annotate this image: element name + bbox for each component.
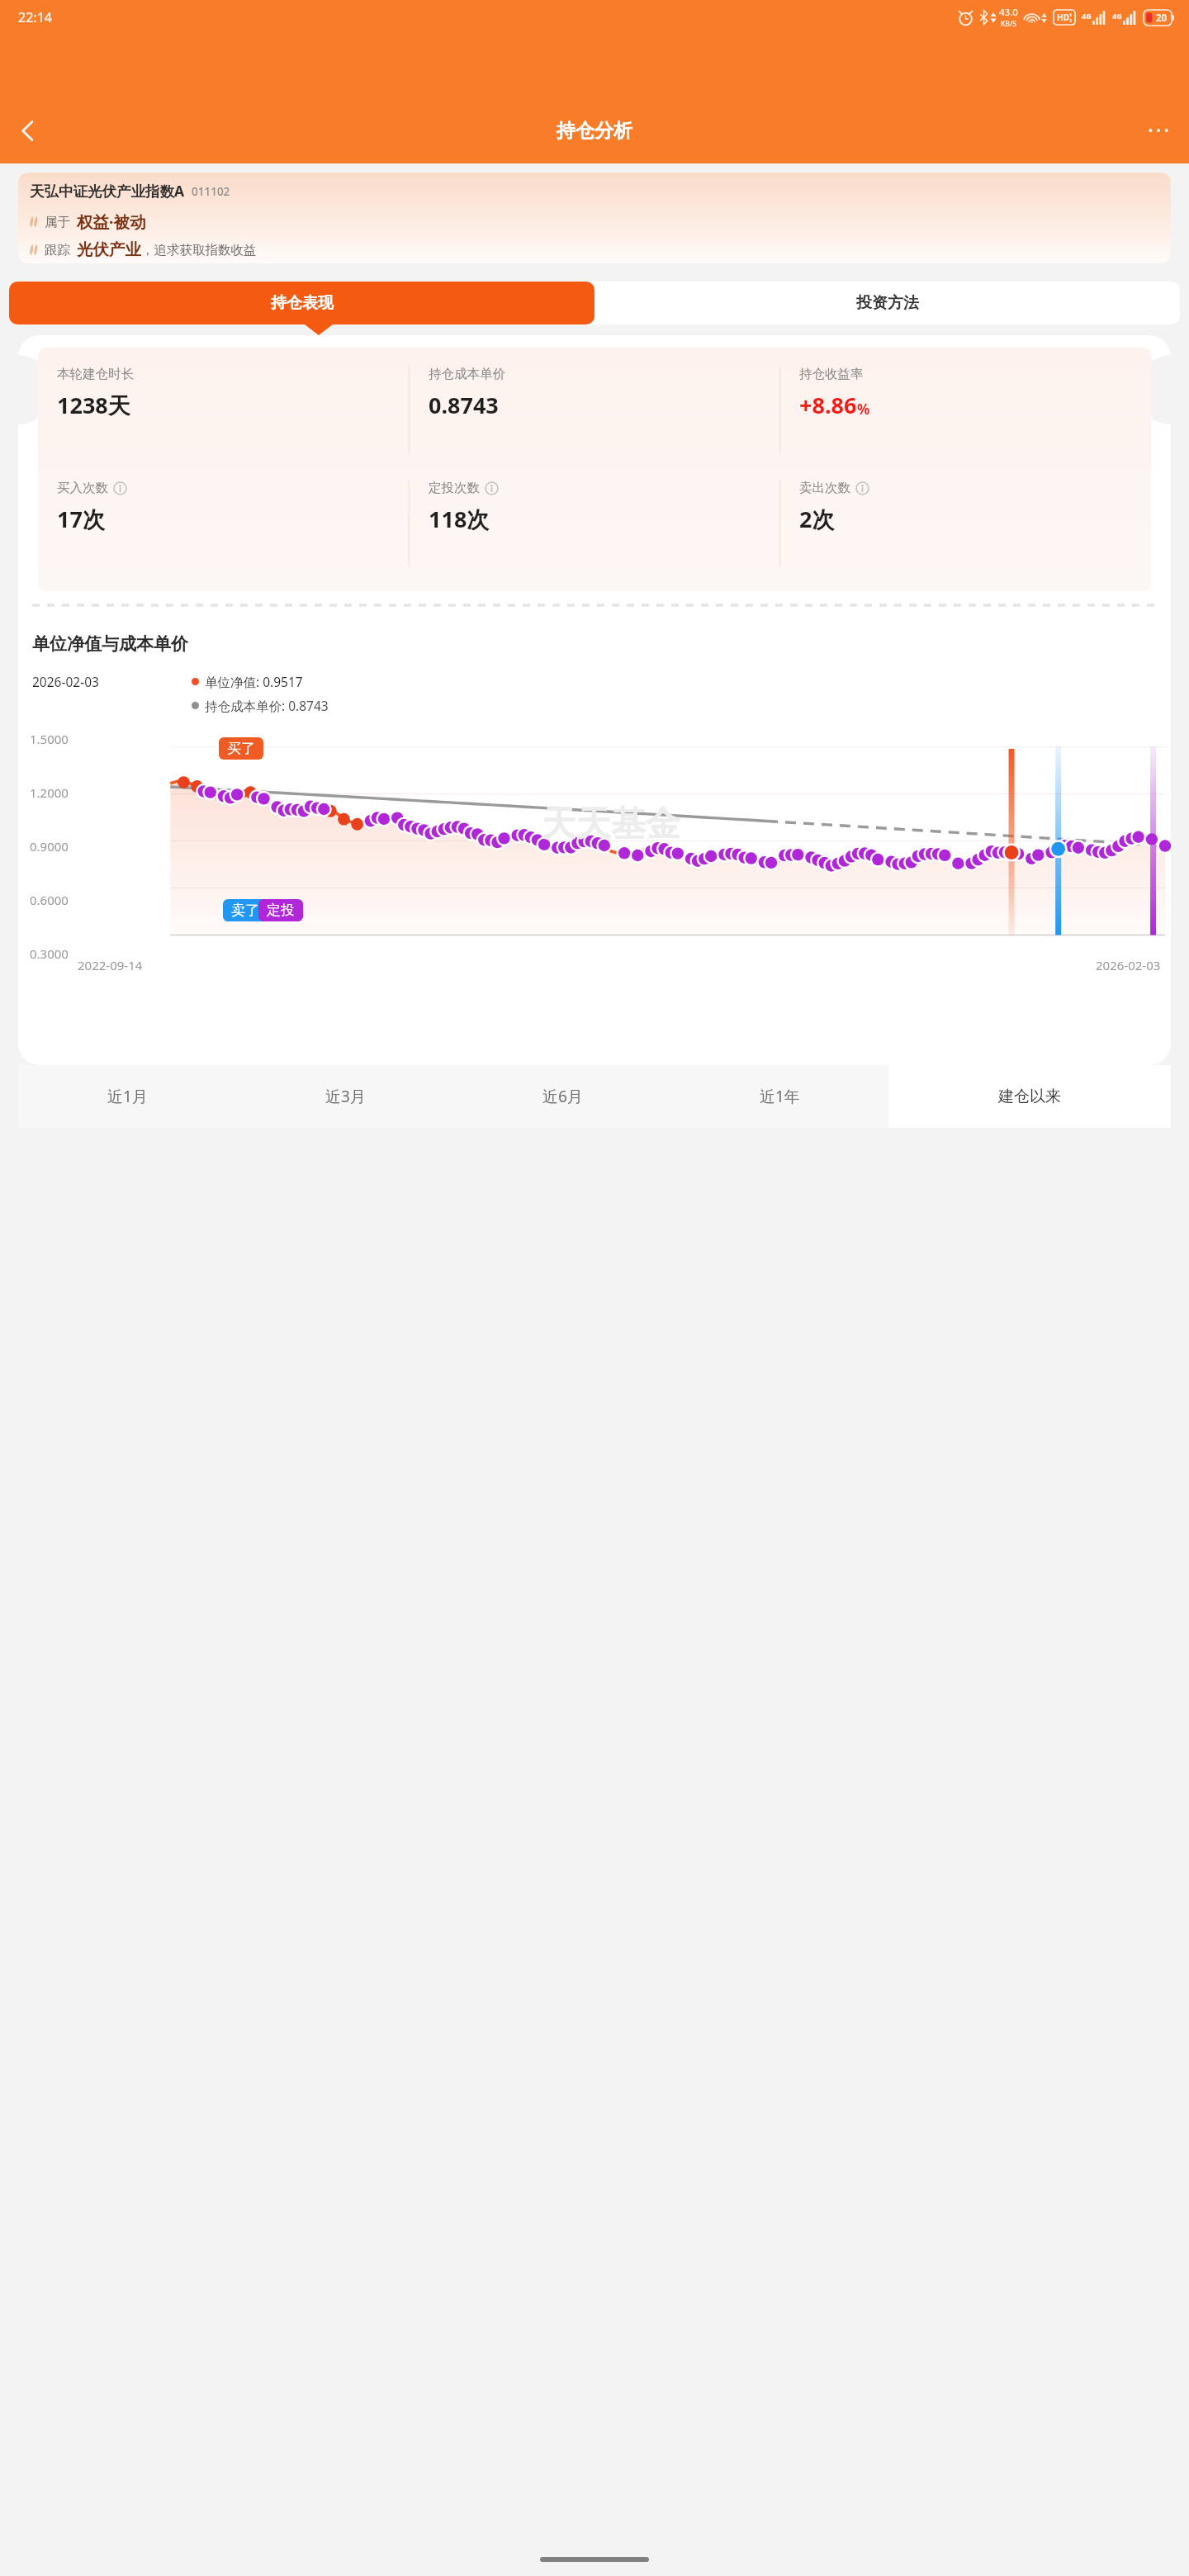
button[interactable]: 定投 — [258, 899, 303, 921]
staticText: 2022-09-14 — [78, 957, 143, 973]
staticText: 2次 — [799, 504, 835, 534]
button[interactable]: 近1年 — [671, 1065, 888, 1128]
staticText: KB/S — [1001, 19, 1016, 29]
staticText: 0.6000 — [30, 892, 69, 908]
button[interactable]: Back — [5, 108, 50, 153]
staticText: 买了 — [227, 740, 255, 757]
button[interactable]: Info — [855, 481, 869, 495]
staticText: 4G — [1112, 11, 1122, 21]
staticText: 0.3000 — [30, 945, 69, 962]
staticText: 0.8743 — [429, 390, 499, 420]
staticText: 买入次数 — [57, 480, 108, 496]
staticText: 建仓以来 — [998, 1087, 1061, 1106]
staticText: 011102 — [192, 184, 230, 199]
button[interactable]: 投资方法 — [594, 282, 1180, 324]
staticText: 定投 — [267, 902, 295, 919]
button[interactable]: 近6月 — [454, 1065, 671, 1128]
button[interactable]: 天弘中证光伏产业指数A — [18, 173, 1171, 263]
button[interactable]: Info — [485, 481, 499, 495]
button[interactable]: 持仓表现 — [9, 282, 594, 324]
staticText: 属于 — [45, 214, 70, 230]
button[interactable]: Info — [113, 481, 127, 495]
staticText: 1.5000 — [30, 731, 69, 747]
staticText: ，追求获取指数收益 — [141, 242, 257, 258]
staticText: 天弘中证光伏产业指数A — [30, 181, 185, 201]
button[interactable]: 买了 — [219, 737, 263, 760]
staticText: 持仓收益率 — [799, 366, 864, 382]
staticText: HD — [1057, 12, 1069, 23]
staticText: 近3月 — [325, 1086, 366, 1107]
staticText: 近6月 — [542, 1086, 583, 1107]
staticText: 118次 — [429, 504, 490, 534]
staticText: 卖出次数 — [799, 480, 850, 496]
staticText: % — [857, 400, 870, 419]
staticText: 跟踪 — [45, 242, 70, 258]
staticText: 本轮建仓时长 — [57, 366, 134, 382]
staticText: 光伏产业 — [77, 239, 141, 260]
staticText: 权益·被动 — [77, 211, 146, 233]
staticText: 单位净值: 0.9517 — [205, 673, 303, 690]
staticText: +8.86 — [799, 390, 857, 420]
staticText: 定投次数 — [429, 480, 480, 496]
button[interactable]: 近3月 — [236, 1065, 454, 1128]
button[interactable]: 建仓以来 — [888, 1065, 1171, 1128]
staticText: 近1年 — [760, 1086, 800, 1107]
button[interactable]: More options — [1136, 108, 1181, 153]
staticText: 43.0 — [999, 6, 1018, 19]
staticText: 1238天 — [57, 390, 130, 420]
button[interactable]: 卖了 — [223, 899, 268, 921]
staticText: 2 — [1069, 17, 1073, 23]
staticText: 持仓成本单价: 0.8743 — [205, 697, 329, 714]
button[interactable]: 近1月 — [18, 1065, 236, 1128]
staticText: 20 — [1156, 12, 1168, 25]
staticText: 持仓分析 — [557, 119, 632, 143]
staticText: 投资方法 — [856, 293, 919, 313]
staticText: 持仓表现 — [271, 293, 334, 313]
staticText: 卖了 — [231, 902, 259, 919]
staticText: 1 — [1069, 12, 1073, 17]
staticText: 22:14 — [18, 8, 52, 26]
staticText: 0.9000 — [30, 838, 69, 855]
staticText: 1.2000 — [30, 784, 69, 801]
staticText: 2026-02-03 — [1096, 957, 1161, 973]
staticText: 近1月 — [107, 1086, 148, 1107]
staticText: 17次 — [57, 504, 105, 534]
staticText: 持仓成本单价 — [429, 366, 505, 382]
staticText: 单位净值与成本单价 — [32, 633, 188, 655]
staticText: 2026-02-03 — [32, 673, 99, 690]
staticText: 天天基金 — [542, 803, 680, 846]
staticText: 4G — [1082, 11, 1092, 21]
